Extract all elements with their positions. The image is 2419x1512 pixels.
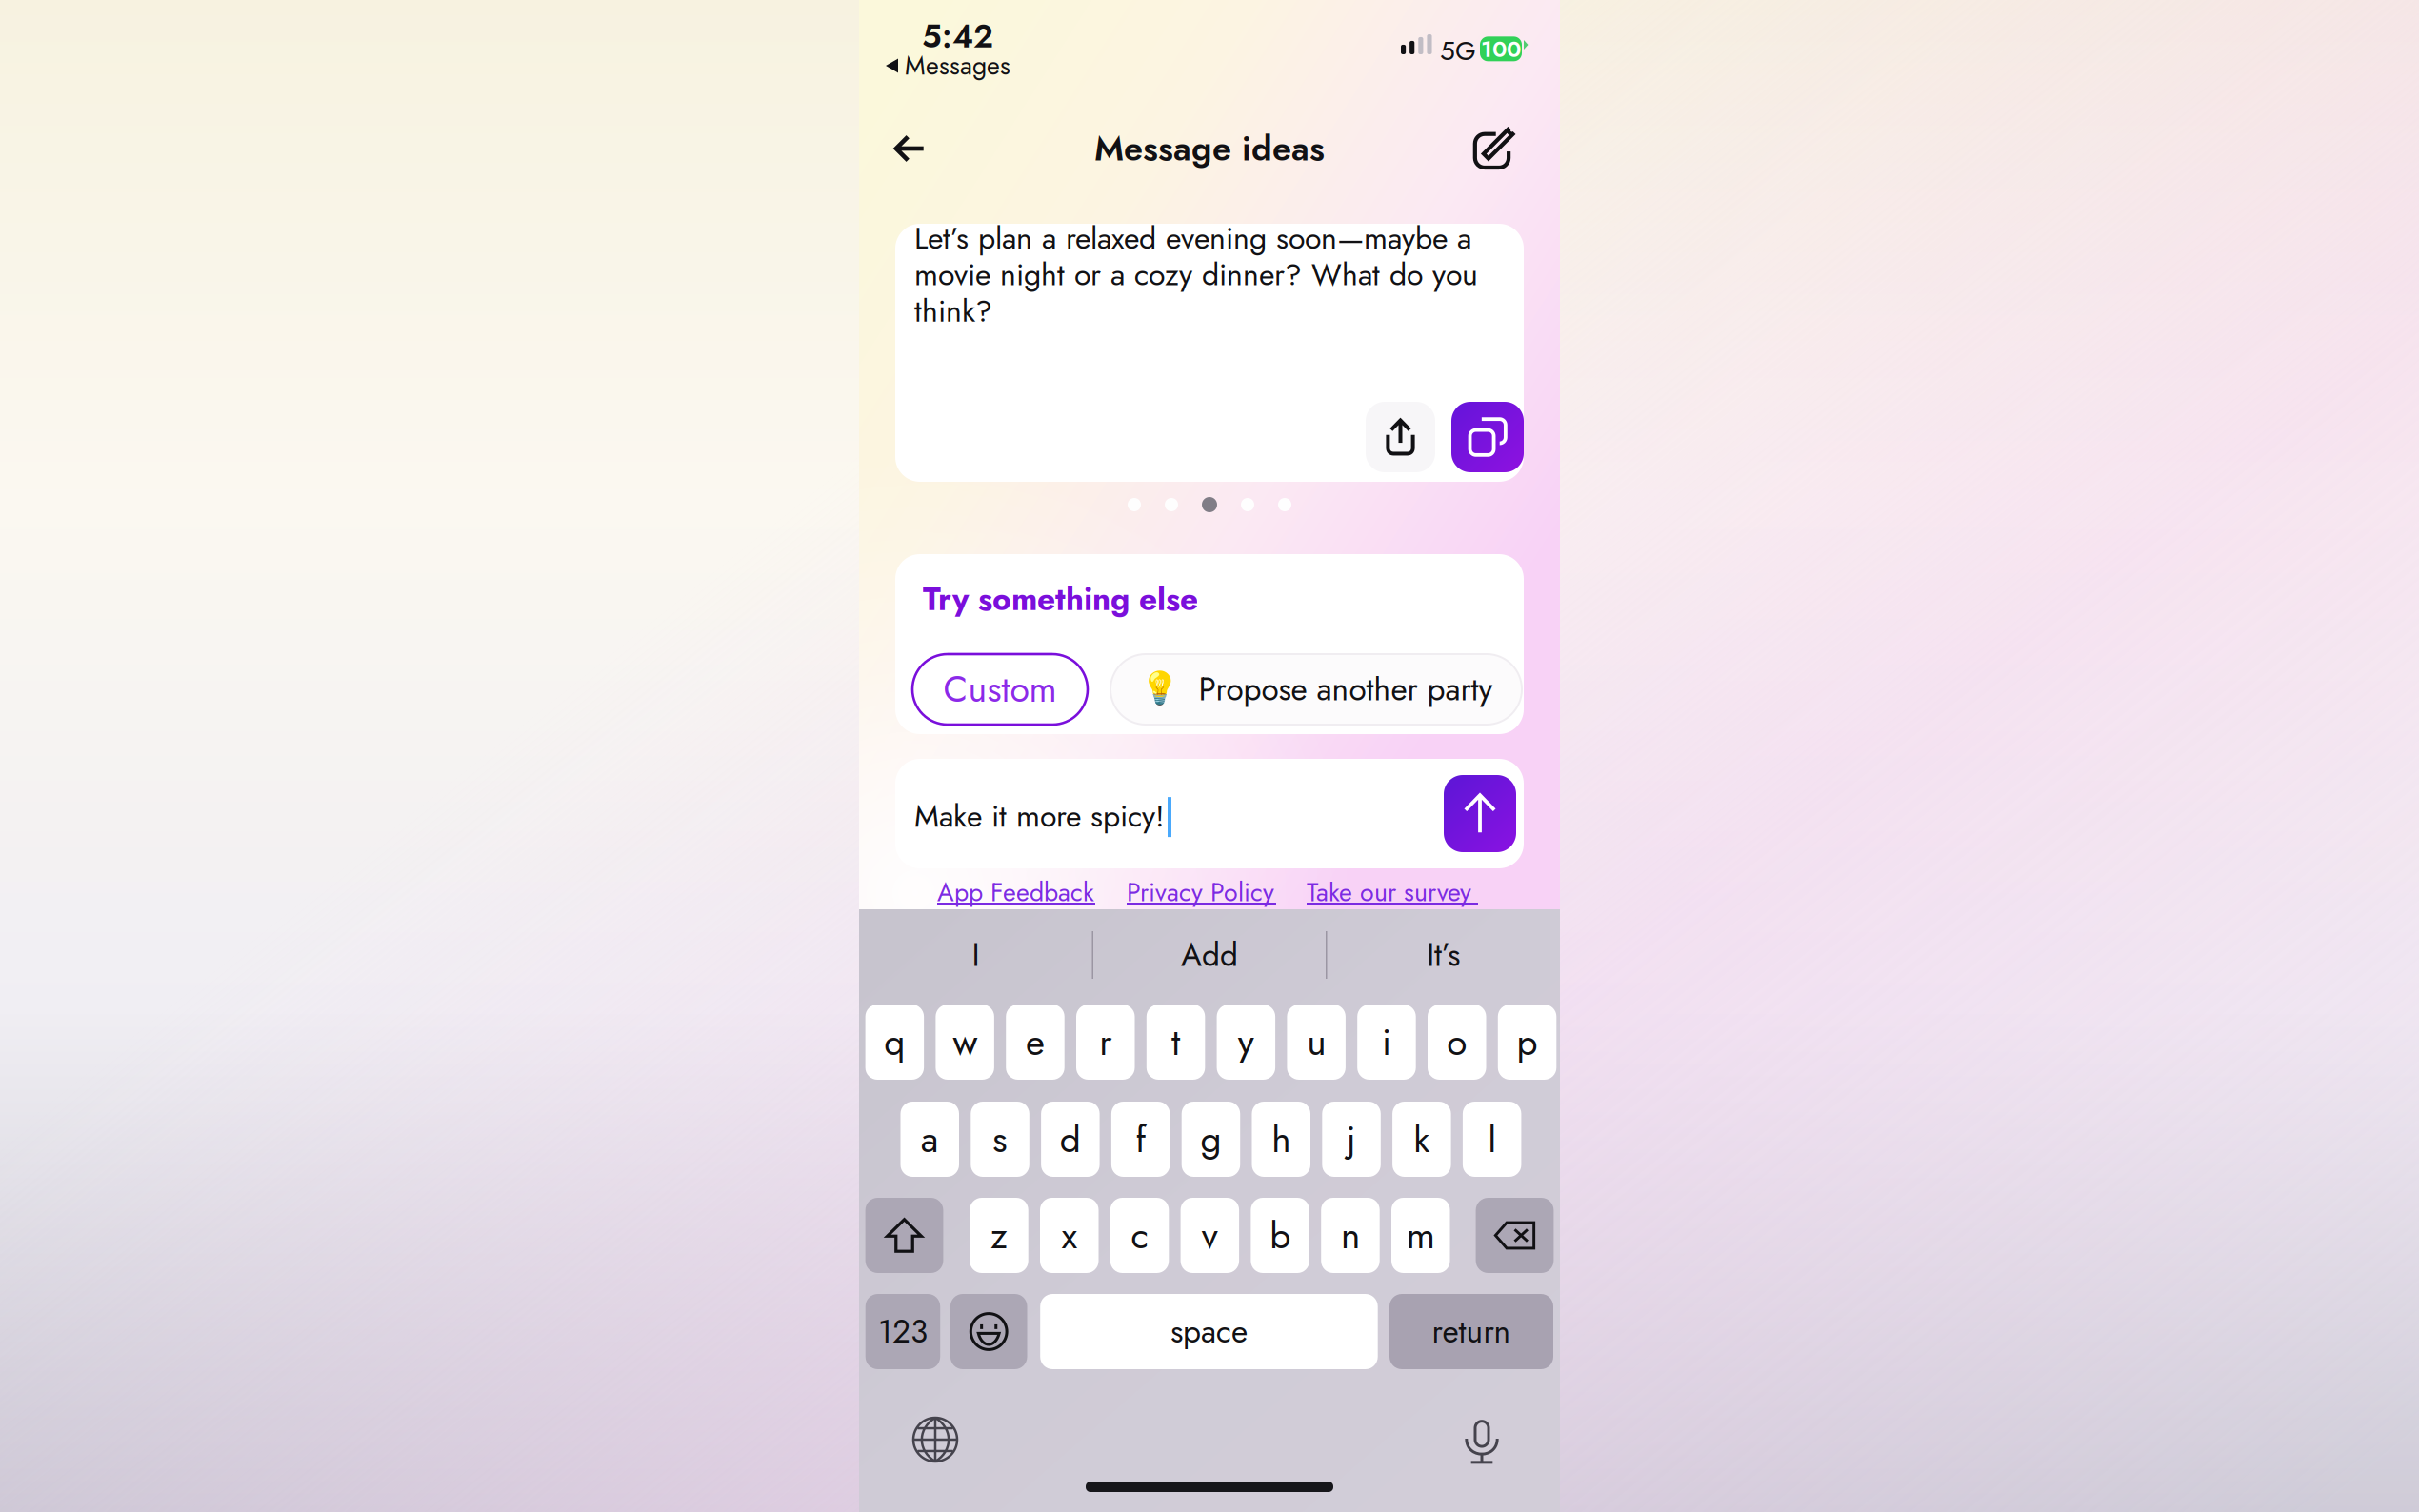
button[interactable]: s [971, 1102, 1029, 1177]
button[interactable]: g [1182, 1102, 1240, 1177]
staticText: u [1307, 1016, 1326, 1069]
button[interactable]: j [1322, 1102, 1381, 1177]
staticText: a [921, 1113, 939, 1166]
button[interactable]: return [1389, 1294, 1553, 1369]
staticText: It’s [1427, 932, 1460, 978]
button[interactable]: Copy [1451, 402, 1524, 472]
staticText: Propose another party [1180, 666, 1493, 712]
staticText: Make it more spicy! [914, 794, 1165, 838]
staticText: h [1272, 1113, 1291, 1166]
staticText: q [884, 1016, 905, 1069]
button[interactable]: App Feedback [937, 874, 1095, 908]
button[interactable]: l [1463, 1102, 1521, 1177]
button[interactable]: Privacy Policy [1127, 874, 1276, 908]
button[interactable]: It’s [1327, 925, 1559, 985]
button[interactable]: Send [1444, 775, 1516, 852]
staticText: y [1238, 1016, 1254, 1069]
button[interactable]: Add [1093, 925, 1326, 985]
button[interactable]: c [1110, 1198, 1169, 1273]
staticText: v [1202, 1209, 1218, 1262]
button[interactable]: u [1287, 1005, 1346, 1080]
staticText: 5G [1440, 31, 1476, 70]
button[interactable]: i [1357, 1005, 1416, 1080]
button[interactable]: p [1498, 1005, 1556, 1080]
staticText: w [952, 1016, 977, 1069]
staticText: o [1447, 1016, 1467, 1069]
staticText: 💡 [1140, 670, 1180, 707]
button[interactable]: k [1392, 1102, 1451, 1177]
staticText: Let’s plan a relaxed evening soon—maybe … [914, 216, 1478, 333]
button[interactable]: x [1040, 1198, 1099, 1273]
button[interactable]: m [1391, 1198, 1450, 1273]
button[interactable]: Switch keyboard [900, 1404, 970, 1475]
staticText: Custom [943, 664, 1057, 715]
staticText: x [1062, 1209, 1077, 1262]
button[interactable]: a [900, 1102, 959, 1177]
button[interactable]: b [1251, 1198, 1309, 1273]
staticText: Take our survey [1307, 874, 1471, 911]
button[interactable]: Custom [912, 654, 1088, 725]
button[interactable]: y [1217, 1005, 1275, 1080]
button[interactable]: Delete [1476, 1198, 1554, 1273]
staticText: 123 [878, 1309, 928, 1355]
staticText: Messages [905, 47, 1010, 84]
staticText: 5:42 [922, 13, 993, 59]
staticText: m [1406, 1209, 1435, 1262]
staticText: b [1270, 1209, 1291, 1262]
staticText: p [1517, 1016, 1538, 1069]
staticText: r [1099, 1016, 1112, 1069]
staticText: f [1135, 1113, 1146, 1166]
button[interactable]: z [970, 1198, 1028, 1273]
staticText: d [1060, 1113, 1081, 1166]
staticText: s [992, 1113, 1008, 1166]
staticText: i [1382, 1016, 1391, 1069]
button[interactable]: h [1252, 1102, 1310, 1177]
button[interactable]: t [1146, 1005, 1205, 1080]
staticText: n [1341, 1209, 1360, 1262]
button[interactable]: Dictate [1447, 1403, 1517, 1474]
button[interactable]: r [1076, 1005, 1135, 1080]
staticText: l [1488, 1113, 1496, 1166]
button[interactable]: 123 [865, 1294, 940, 1369]
button[interactable]: Shift [865, 1198, 943, 1273]
staticText: space [1170, 1309, 1248, 1355]
button[interactable]: Messages [886, 50, 1010, 82]
button[interactable]: New message [1459, 112, 1529, 183]
staticText: Add [1181, 932, 1238, 978]
staticText: Message ideas [1094, 124, 1325, 173]
staticText: j [1347, 1113, 1356, 1166]
staticText: g [1200, 1113, 1221, 1166]
staticText: z [990, 1209, 1008, 1262]
button[interactable]: f [1111, 1102, 1170, 1177]
button[interactable]: q [865, 1005, 924, 1080]
staticText: I [972, 932, 980, 978]
button[interactable]: n [1321, 1198, 1380, 1273]
button[interactable]: space [1040, 1294, 1378, 1369]
button[interactable]: 💡 [1110, 654, 1522, 725]
button[interactable]: Back [874, 113, 945, 184]
button[interactable]: e [1006, 1005, 1064, 1080]
button[interactable]: d [1041, 1102, 1100, 1177]
button[interactable]: Emoji [950, 1294, 1027, 1369]
staticText: 100 [1481, 32, 1521, 65]
staticText: t [1171, 1016, 1180, 1069]
staticText: return [1432, 1309, 1511, 1355]
staticText: Try something else [923, 576, 1198, 622]
button[interactable]: o [1428, 1005, 1486, 1080]
button[interactable]: v [1181, 1198, 1239, 1273]
button[interactable]: Share [1366, 402, 1435, 472]
staticText: e [1026, 1016, 1045, 1069]
button[interactable]: I [860, 925, 1092, 985]
button[interactable]: Take our survey [1307, 874, 1478, 908]
staticText: k [1414, 1113, 1430, 1166]
staticText: App Feedback [937, 874, 1094, 911]
staticText: c [1131, 1209, 1148, 1262]
button[interactable]: w [936, 1005, 994, 1080]
staticText: Privacy Policy [1127, 874, 1274, 911]
